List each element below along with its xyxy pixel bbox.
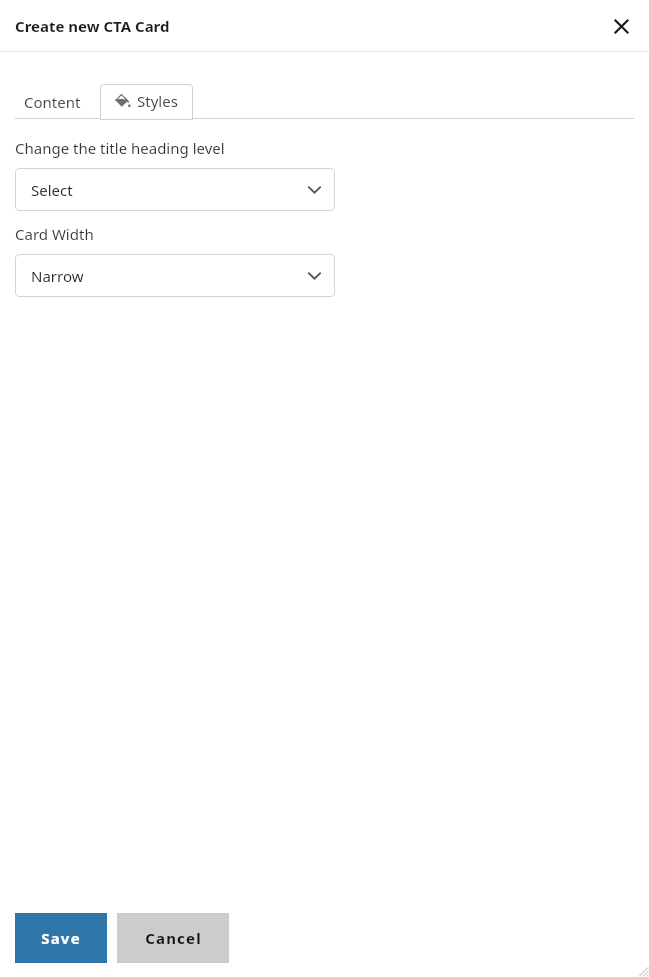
staticText: Content [24, 92, 81, 112]
button[interactable]: Save [15, 913, 107, 963]
button[interactable]: Content [15, 84, 90, 119]
button[interactable]: Narrow [15, 254, 335, 297]
staticText: Create new CTA Card [15, 16, 170, 36]
staticText: Card Width [15, 224, 94, 244]
staticText: Cancel [145, 928, 202, 948]
button[interactable]: Styles [100, 84, 193, 120]
button[interactable]: Select [15, 168, 335, 211]
button[interactable]: Close [603, 8, 639, 44]
staticText: Narrow [31, 266, 84, 286]
staticText: Styles [137, 91, 178, 111]
staticText: Save [41, 928, 81, 948]
staticText: Select [31, 180, 73, 200]
button[interactable]: Cancel [117, 913, 229, 963]
staticText: Change the title heading level [15, 138, 225, 158]
